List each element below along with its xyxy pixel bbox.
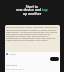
button[interactable]: Lorem ipsum dolor sit amet, consectetur …	[5, 25, 60, 52]
staticText: Lorem ipsum dolor sit amet, consectetur …	[6, 26, 59, 41]
button[interactable]: Continue	[50, 57, 59, 61]
staticText: Start to one device and top up another	[2, 4, 62, 16]
staticText: Lorem ipsum dolor sit	[6, 68, 25, 70]
button[interactable]: Account	[5, 52, 60, 72]
staticText: Account	[9, 53, 16, 55]
staticText: Total balance	[6, 64, 18, 66]
